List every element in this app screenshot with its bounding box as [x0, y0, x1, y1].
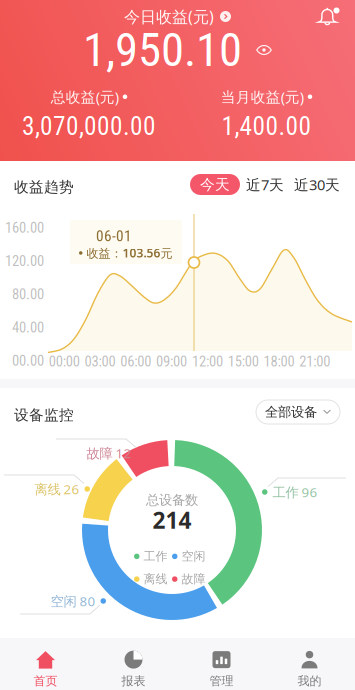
staticText: 80.00: [12, 286, 44, 303]
button[interactable]: 近30天: [290, 174, 344, 195]
button[interactable]: 全部设备: [256, 400, 340, 424]
staticText: 离线: [143, 572, 167, 586]
staticText: 工作 96: [272, 483, 317, 501]
staticText: 报表: [121, 674, 145, 688]
staticText: 故障 12: [86, 444, 131, 462]
staticText: 06:00: [120, 353, 151, 370]
staticText: 我的: [297, 674, 321, 688]
staticText: 近30天: [294, 175, 340, 194]
staticText: 03:00: [84, 353, 115, 370]
button[interactable]: 通知: [313, 3, 341, 31]
staticText: 总设备数: [146, 492, 198, 508]
staticText: 3,070,000.00: [22, 111, 156, 141]
staticText: 今天: [200, 175, 230, 193]
staticText: 15:00: [228, 353, 259, 370]
staticText: 120.00: [5, 252, 44, 270]
staticText: 全部设备: [265, 404, 317, 420]
staticText: 1,950.10: [83, 23, 242, 77]
staticText: 21:00: [299, 353, 330, 370]
button[interactable]: 报表: [89, 646, 177, 690]
staticText: 12:00: [192, 353, 223, 370]
staticText: 故障: [181, 572, 205, 586]
staticText: 收益：103.56元: [86, 245, 172, 261]
button[interactable]: 今天: [190, 174, 240, 195]
staticText: 离线 26: [34, 480, 79, 498]
staticText: 工作: [143, 549, 167, 564]
staticText: 今日收益(元): [124, 6, 214, 27]
staticText: 09:00: [156, 353, 187, 370]
staticText: 18:00: [263, 353, 294, 370]
button[interactable]: 近7天: [242, 174, 288, 195]
staticText: 1,400.00: [221, 111, 311, 141]
staticText: 近7天: [246, 175, 284, 194]
staticText: 空闲: [181, 549, 205, 564]
staticText: 06-01: [96, 227, 132, 245]
button[interactable]: 管理: [177, 646, 265, 690]
staticText: 首页: [33, 674, 57, 688]
staticText: 当月收益(元): [221, 87, 304, 106]
staticText: 00:00: [49, 353, 80, 370]
staticText: 空闲 80: [50, 592, 95, 610]
staticText: 管理: [209, 674, 233, 688]
button[interactable]: 今日收益(元): [124, 8, 231, 25]
staticText: 160.00: [5, 219, 44, 236]
staticText: 00.00: [12, 352, 44, 369]
staticText: 收益趋势: [14, 178, 74, 196]
button[interactable]: 首页: [1, 646, 89, 690]
staticText: 设备监控: [14, 406, 74, 424]
staticText: 总收益(元): [51, 87, 119, 106]
button[interactable]: 我的: [265, 646, 353, 690]
staticText: 40.00: [12, 319, 44, 336]
staticText: 214: [152, 505, 191, 535]
